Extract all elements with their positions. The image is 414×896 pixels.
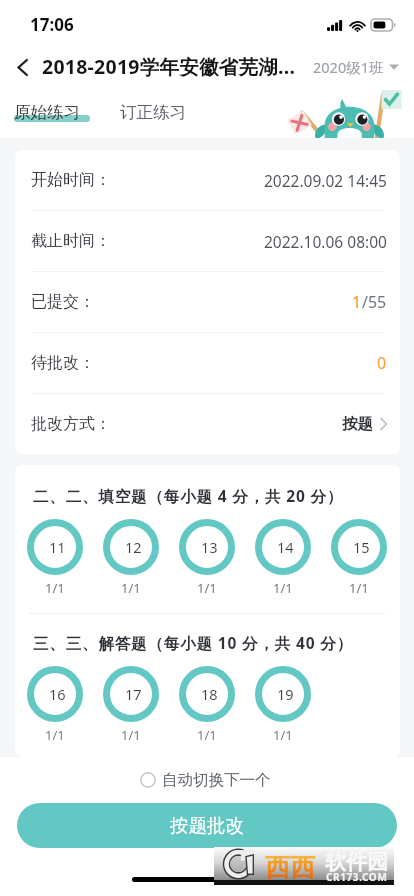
- button[interactable]: 2020级1班: [313, 57, 414, 77]
- staticText: 1/1: [121, 726, 141, 744]
- staticText: 按题批改: [170, 814, 244, 837]
- staticText: 1: [352, 291, 362, 313]
- staticText: 13: [201, 537, 218, 557]
- staticText: 0: [377, 352, 387, 374]
- staticText: 11: [49, 537, 66, 557]
- staticText: 1/1: [349, 579, 369, 597]
- button[interactable]: 按题批改: [17, 803, 397, 848]
- staticText: 已提交：: [31, 292, 95, 312]
- staticText: 1/1: [121, 579, 141, 597]
- staticText: 15: [353, 537, 370, 557]
- button[interactable]: 14: [255, 519, 311, 597]
- button[interactable]: 原始练习: [14, 102, 90, 123]
- staticText: 待批改：: [31, 353, 95, 373]
- staticText: 西西: [265, 852, 315, 883]
- staticText: 1/1: [273, 726, 293, 744]
- button[interactable]: Back: [7, 51, 39, 83]
- staticText: 1/1: [197, 579, 217, 597]
- staticText: 14: [277, 537, 294, 557]
- staticText: 19: [277, 684, 294, 704]
- staticText: 1/1: [45, 726, 65, 744]
- staticText: 18: [201, 684, 218, 704]
- staticText: 三、三、解答题（每小题 10 分，共 40 分）: [33, 632, 353, 653]
- staticText: 12: [125, 537, 142, 557]
- staticText: 2018-2019学年安徽省芜湖...: [42, 53, 296, 80]
- button[interactable]: 批改方式：: [15, 394, 400, 454]
- button[interactable]: 自动切换下一个: [0, 757, 414, 803]
- button[interactable]: 12: [103, 519, 159, 597]
- staticText: 2022.10.06 08:00: [264, 231, 387, 252]
- button[interactable]: 19: [255, 666, 311, 744]
- staticText: 17: [125, 684, 142, 704]
- button[interactable]: 17: [103, 666, 159, 744]
- staticText: 批改方式：: [31, 414, 111, 434]
- staticText: 二、二、填空题（每小题 4 分，共 20 分）: [33, 485, 344, 506]
- staticText: 1/1: [45, 579, 65, 597]
- staticText: /55: [362, 291, 387, 313]
- staticText: CR173.COM: [326, 870, 388, 884]
- staticText: 16: [49, 684, 66, 704]
- staticText: 2020级1班: [313, 57, 384, 77]
- staticText: 原始练习: [14, 102, 80, 123]
- button[interactable]: 订正练习: [120, 102, 186, 123]
- staticText: 自动切换下一个: [162, 770, 271, 790]
- staticText: 按题: [342, 414, 373, 434]
- staticText: 软件园: [325, 849, 388, 875]
- staticText: 开始时间：: [31, 170, 111, 190]
- staticText: 17:06: [30, 13, 74, 36]
- button[interactable]: 16: [27, 666, 83, 744]
- staticText: 1/1: [197, 726, 217, 744]
- staticText: 订正练习: [120, 102, 186, 123]
- staticText: 2022.09.02 14:45: [264, 170, 387, 191]
- button[interactable]: 15: [331, 519, 387, 597]
- button[interactable]: 18: [179, 666, 235, 744]
- button[interactable]: 13: [179, 519, 235, 597]
- staticText: 截止时间：: [31, 231, 111, 251]
- button[interactable]: 11: [27, 519, 83, 597]
- staticText: 1/1: [273, 579, 293, 597]
